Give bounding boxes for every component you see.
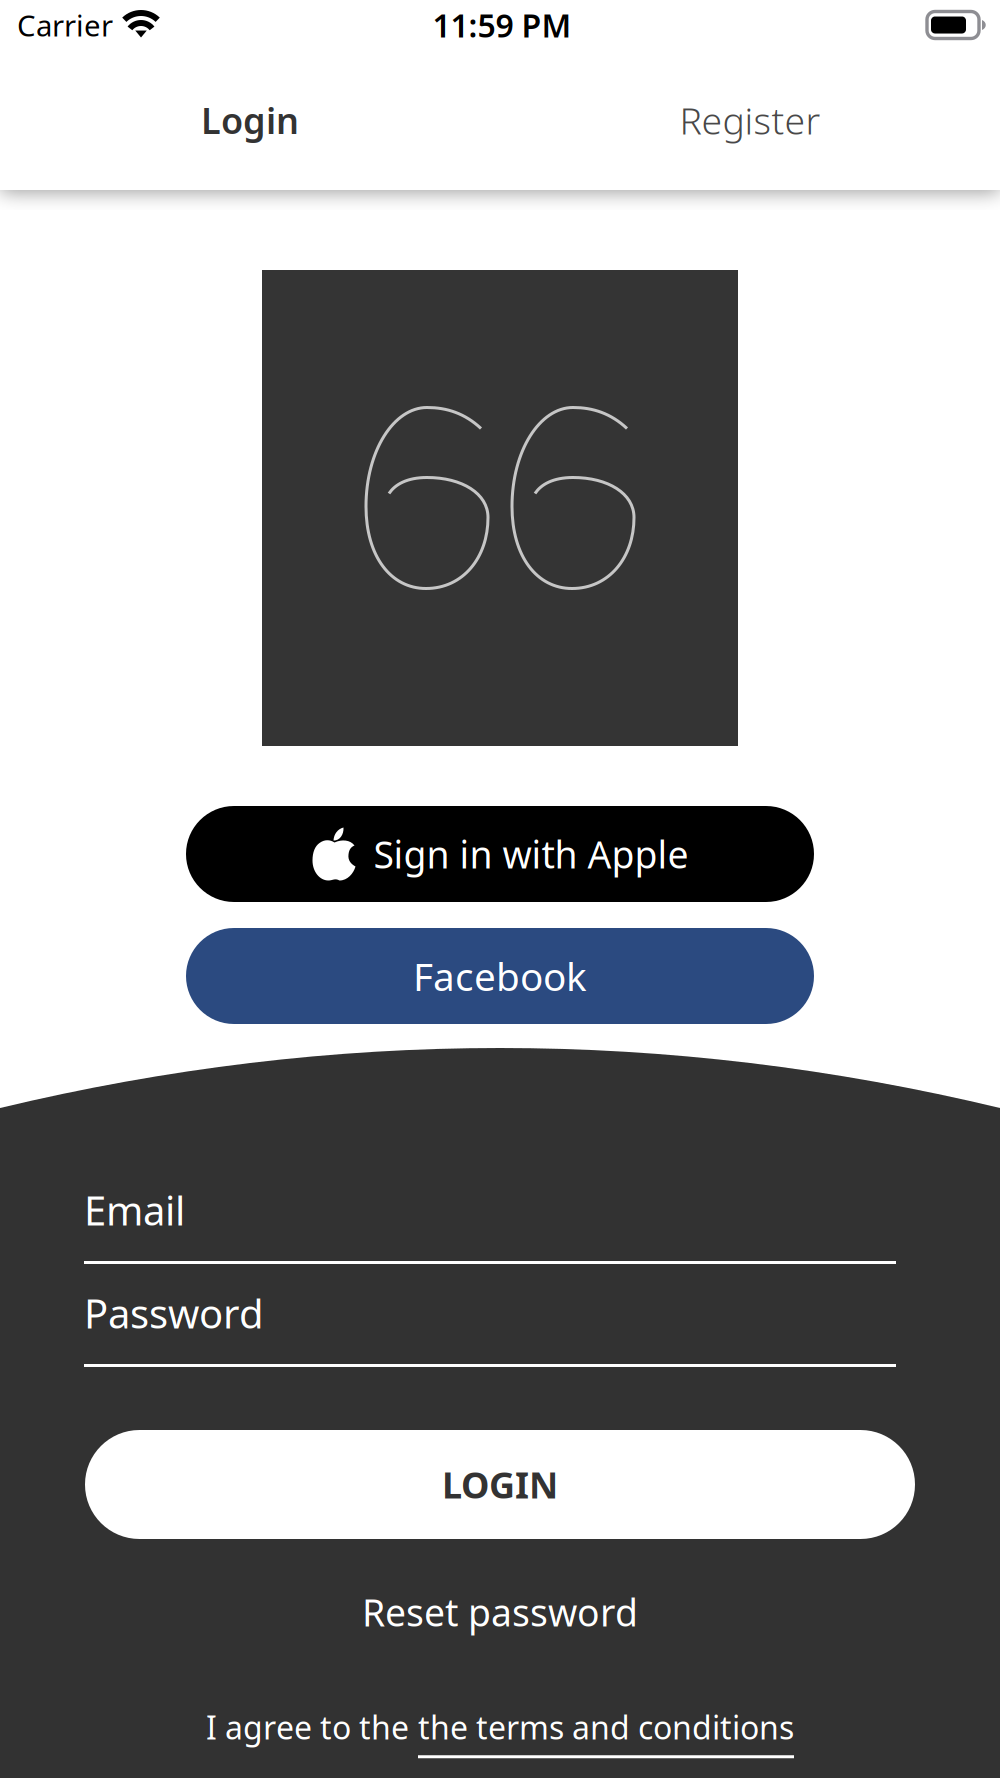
button[interactable]: the terms and conditions — [418, 1706, 794, 1748]
button[interactable]: Sign in with Apple — [186, 806, 814, 902]
staticText: the terms and conditions — [418, 1706, 794, 1748]
button[interactable]: Login — [0, 50, 500, 190]
staticText: Password — [84, 1286, 264, 1339]
button[interactable]: Reset password — [0, 1587, 1000, 1637]
staticText: LOGIN — [442, 1461, 558, 1508]
staticText: Carrier — [17, 5, 113, 44]
button[interactable]: Facebook — [186, 928, 814, 1024]
staticText: 11:59 PM — [432, 4, 571, 46]
button[interactable]: Register — [500, 50, 1000, 190]
staticText: Email — [84, 1183, 185, 1236]
staticText: Facebook — [413, 950, 587, 1002]
button[interactable]: LOGIN — [85, 1430, 915, 1539]
staticText: Login — [201, 96, 299, 144]
staticText: Sign in with Apple — [373, 829, 688, 879]
staticText: Reset password — [362, 1587, 638, 1637]
staticText: Register — [679, 95, 820, 145]
staticText: I agree to the — [206, 1706, 409, 1748]
